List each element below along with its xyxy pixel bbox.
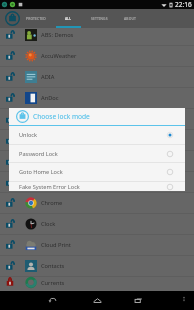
staticText: Car Home (41, 178, 68, 186)
button[interactable]: ADIA (0, 67, 194, 87)
button[interactable]: App logo (0, 9, 16, 28)
staticText: Contacts (41, 262, 65, 270)
button[interactable]: ALL (56, 9, 81, 28)
staticText: Goto Home Lock (19, 168, 63, 176)
button[interactable]: PROTECTED (16, 9, 56, 28)
staticText: Cloud Print (41, 241, 71, 249)
staticText: PROTECTED (26, 16, 46, 21)
staticText: Camera (41, 157, 62, 165)
staticText: 22:16 (175, 0, 192, 9)
staticText: Password Lock (19, 150, 58, 158)
staticText: Choose lock mode (33, 112, 90, 121)
button[interactable]: AnDoc (0, 88, 194, 108)
button[interactable]: Car Home (0, 172, 194, 192)
button[interactable]: Cloud Print (0, 235, 194, 255)
staticText: Currents (41, 279, 65, 287)
staticText: ADIA (41, 73, 55, 81)
button[interactable]: Home (86, 291, 108, 310)
button[interactable]: Currents (0, 277, 194, 288)
staticText: ALL (65, 16, 72, 21)
button[interactable]: Goto Home Lock (9, 163, 185, 181)
button[interactable]: Fake System Error Lock (9, 182, 185, 191)
button[interactable]: ABOUT (117, 9, 144, 28)
button[interactable]: AccuWeather (0, 46, 194, 66)
button[interactable]: Unlock (9, 126, 185, 144)
button[interactable]: Calculator (0, 109, 194, 129)
button[interactable]: Recent apps (127, 291, 149, 310)
staticText: SETTINGS (91, 16, 108, 21)
staticText: Unlock (19, 131, 38, 139)
button[interactable]: Back (41, 291, 63, 310)
button[interactable]: ABS: Demos (0, 25, 194, 45)
button[interactable]: Contacts (0, 256, 194, 276)
button[interactable]: Camera (0, 151, 194, 171)
button[interactable]: More options (176, 291, 191, 306)
staticText: AnDoc (41, 94, 59, 102)
button[interactable]: Calendar (0, 130, 194, 150)
staticText: ABS: Demos (41, 31, 74, 39)
staticText: Fake System Error Lock (19, 183, 80, 191)
button[interactable]: Clock (0, 214, 194, 234)
button[interactable]: Chrome (0, 193, 194, 213)
staticText: Chrome (41, 199, 63, 207)
button[interactable]: SETTINGS (81, 9, 117, 28)
staticText: Calculator (41, 115, 68, 123)
staticText: Clock (41, 220, 56, 228)
button[interactable]: Password Lock (9, 145, 185, 162)
staticText: AccuWeather (41, 52, 77, 60)
staticText: ABOUT (124, 16, 137, 21)
